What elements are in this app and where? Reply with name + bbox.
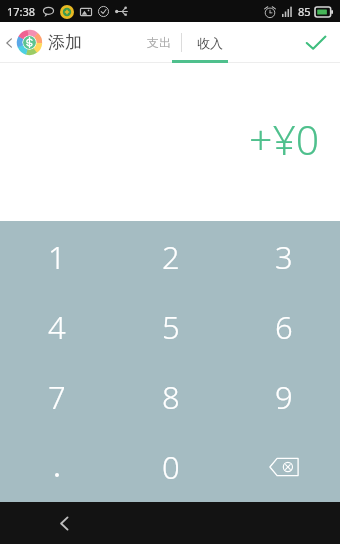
staticText: 17:38: [7, 4, 36, 19]
button[interactable]: 0: [114, 432, 227, 502]
button[interactable]: 9: [227, 362, 340, 432]
staticText: 7: [48, 376, 66, 418]
button[interactable]: 5: [114, 292, 227, 362]
button[interactable]: 确认: [292, 22, 340, 63]
staticText: 9: [275, 376, 293, 418]
staticText: 支出: [147, 35, 171, 50]
staticText: 6: [275, 306, 293, 348]
button[interactable]: 8: [114, 362, 227, 432]
staticText: 4: [48, 306, 66, 348]
button[interactable]: 1: [0, 221, 114, 292]
button[interactable]: [0, 432, 114, 502]
staticText: 8: [162, 376, 180, 418]
staticText: 2: [162, 236, 180, 278]
button[interactable]: 支出: [136, 22, 181, 63]
button[interactable]: 7: [0, 362, 114, 432]
button[interactable]: 6: [227, 292, 340, 362]
staticText: 5: [162, 306, 180, 348]
staticText: 3: [275, 236, 293, 278]
button[interactable]: 2: [114, 221, 227, 292]
staticText: 0: [162, 446, 180, 488]
staticText: 添加: [48, 32, 82, 53]
staticText: 85: [298, 4, 311, 19]
button[interactable]: 退格: [227, 432, 340, 502]
button[interactable]: 收入: [182, 22, 238, 63]
button[interactable]: 添加: [0, 22, 92, 63]
staticText: +¥0: [249, 111, 320, 167]
staticText: 1: [48, 236, 66, 278]
button[interactable]: 4: [0, 292, 114, 362]
staticText: 收入: [197, 35, 223, 51]
button[interactable]: 返回: [44, 503, 84, 543]
button[interactable]: 3: [227, 221, 340, 292]
